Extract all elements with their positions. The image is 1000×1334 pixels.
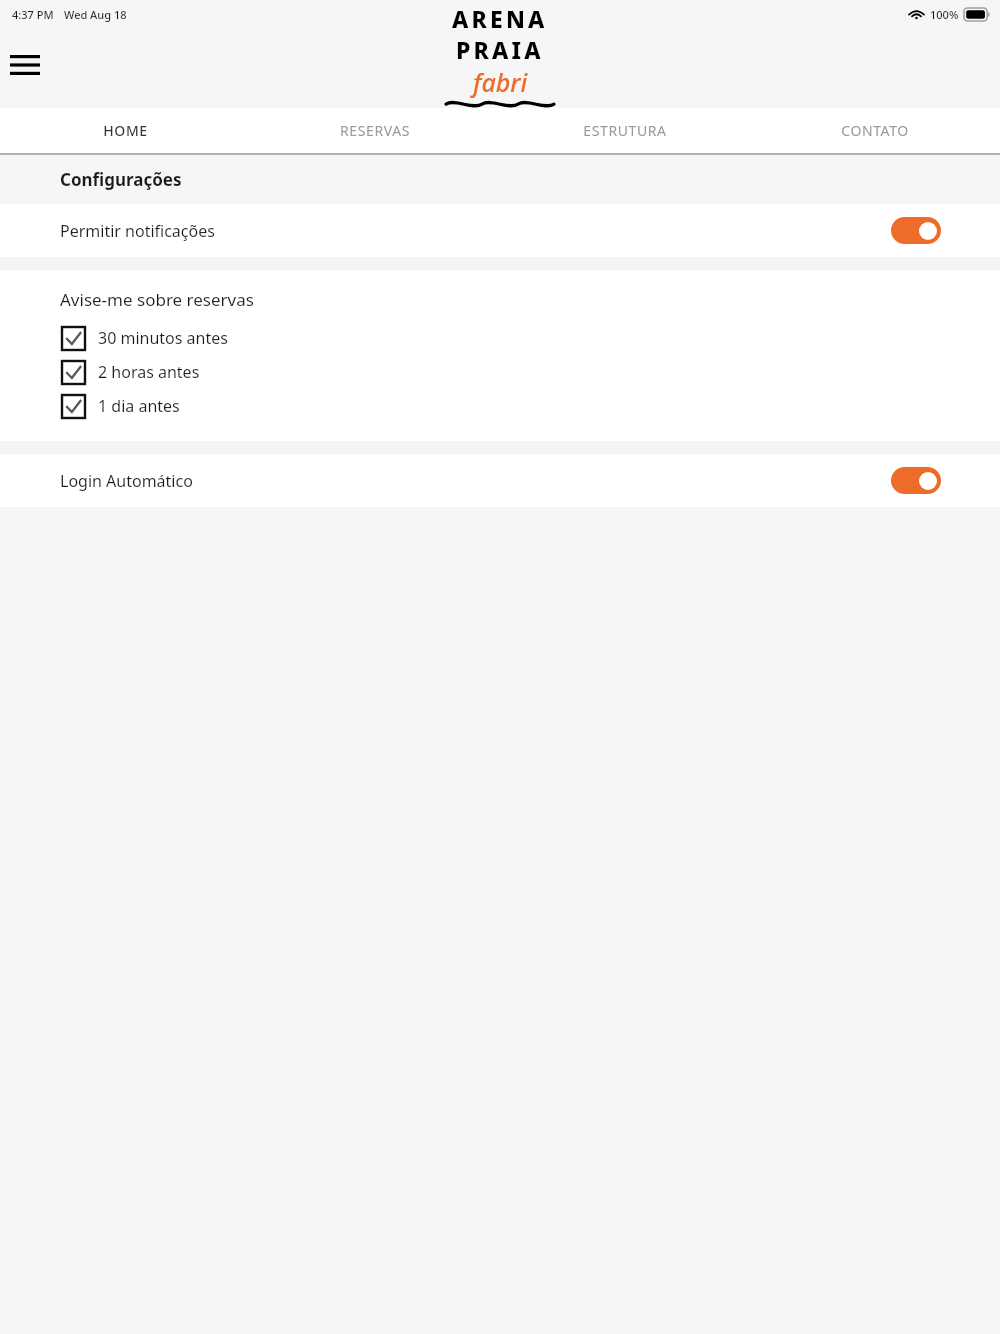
staticText: HOME — [103, 121, 148, 140]
staticText: CONTATO — [841, 121, 909, 140]
button[interactable]: HOME — [0, 108, 250, 153]
staticText: ESTRUTURA — [583, 121, 667, 140]
button[interactable]: 30 minutos antes — [0, 321, 1000, 355]
staticText: 30 minutos antes — [98, 327, 228, 349]
button[interactable]: Permitir notificações — [0, 204, 1000, 257]
staticText: 100% — [930, 7, 959, 22]
staticText: 1 dia antes — [98, 395, 180, 417]
button[interactable]: RESERVAS — [250, 108, 500, 153]
staticText: Avise-me sobre reservas — [60, 288, 254, 311]
staticText: Login Automático — [60, 470, 193, 492]
button[interactable]: CONTATO — [750, 108, 1000, 153]
staticText: ARENA — [452, 3, 548, 34]
button[interactable]: 2 horas antes — [0, 355, 1000, 389]
button[interactable]: 1 dia antes — [0, 389, 1000, 423]
button[interactable]: Login Automático — [0, 454, 1000, 507]
button[interactable]: ARENA — [425, 3, 575, 111]
button[interactable]: Toggle, on — [891, 217, 941, 244]
staticText: 2 horas antes — [98, 361, 200, 383]
staticText: Wed Aug 18 — [64, 7, 127, 22]
staticText: PRAIA — [456, 34, 544, 65]
staticText: Permitir notificações — [60, 220, 215, 242]
staticText: fabri — [473, 65, 528, 99]
button[interactable]: Open navigation menu — [4, 44, 46, 86]
button[interactable]: Toggle, on — [891, 467, 941, 494]
staticText: 4:37 PM — [12, 7, 54, 22]
staticText: Configurações — [60, 168, 182, 191]
button[interactable]: ESTRUTURA — [500, 108, 750, 153]
staticText: RESERVAS — [340, 121, 410, 140]
